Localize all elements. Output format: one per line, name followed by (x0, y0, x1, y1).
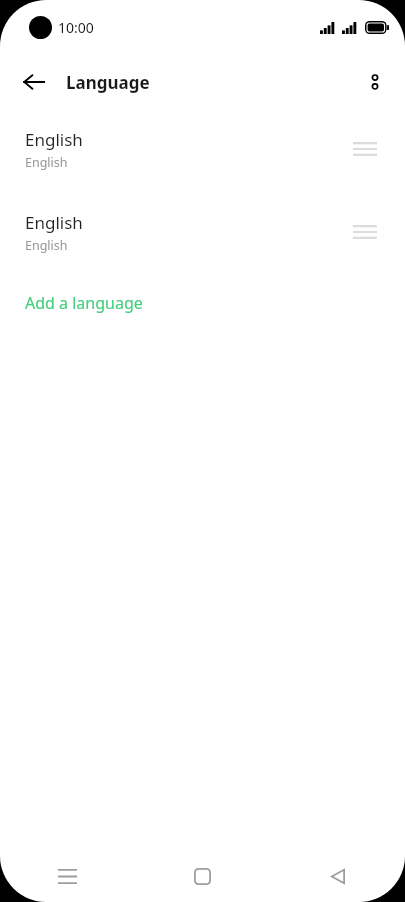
button[interactable]: English (0, 120, 405, 178)
button[interactable]: Back (270, 850, 405, 902)
button[interactable]: English (0, 203, 405, 261)
button[interactable]: Home (135, 850, 270, 902)
button[interactable]: Add a language (0, 286, 405, 320)
button[interactable]: Reorder (345, 212, 385, 252)
staticText: English (25, 128, 83, 151)
staticText: Add a language (25, 292, 143, 314)
button[interactable]: Reorder (345, 129, 385, 169)
staticText: Language (66, 71, 150, 94)
button[interactable]: Recent apps (0, 850, 135, 902)
staticText: English (25, 211, 83, 234)
staticText: 10:00 (58, 18, 94, 37)
button[interactable]: Back (12, 60, 56, 104)
button[interactable]: More options (353, 60, 397, 104)
staticText: English (25, 237, 68, 254)
staticText: English (25, 154, 68, 171)
